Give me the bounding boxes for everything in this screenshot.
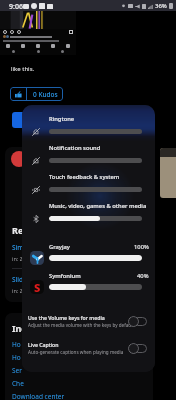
staticText: Live Caption xyxy=(28,341,59,348)
button[interactable] xyxy=(22,336,155,358)
other: BellOff xyxy=(31,127,41,137)
staticText: in: Z xyxy=(12,255,23,262)
staticText: 36% xyxy=(155,2,167,10)
button[interactable] xyxy=(22,112,155,134)
button[interactable]: Ser xyxy=(12,366,22,375)
staticText: Inc xyxy=(12,322,26,334)
button[interactable]: 0 Kudos xyxy=(10,87,63,101)
button[interactable]: Ho xyxy=(12,340,21,349)
staticText: 9:06 xyxy=(9,2,23,12)
other: Bluetooth xyxy=(31,214,41,224)
staticText: Symfonium xyxy=(49,272,81,280)
button[interactable]: Use the Volume keys for media xyxy=(128,315,147,327)
staticText: S xyxy=(34,280,41,294)
staticText: like this. xyxy=(11,65,35,73)
button[interactable] xyxy=(22,268,155,291)
staticText: Use the Volume keys for media xyxy=(28,314,105,321)
staticText: Sim xyxy=(12,243,24,252)
other: BellOff xyxy=(31,156,41,166)
button[interactable] xyxy=(22,170,155,192)
staticText: Grayjay xyxy=(49,243,70,251)
button[interactable]: Che xyxy=(12,379,24,388)
staticText: 100% xyxy=(134,243,149,251)
staticText: Auto-generate captions when playing medi… xyxy=(28,349,124,355)
staticText: 0 Kudos xyxy=(33,90,58,99)
other: Vibrate xyxy=(31,185,41,195)
staticText: Music, video, games & other media xyxy=(49,202,147,210)
staticText: Notification sound xyxy=(49,144,101,152)
staticText: Touch feedback & system xyxy=(49,173,120,181)
staticText: Re xyxy=(12,224,24,236)
button[interactable] xyxy=(22,141,155,163)
button[interactable] xyxy=(22,309,155,331)
staticText: Adjust the media volume with the keys by… xyxy=(28,322,134,328)
staticText: Ringtone xyxy=(49,115,75,123)
staticText: Slid xyxy=(12,275,24,284)
button[interactable]: Live Caption xyxy=(128,342,147,354)
button[interactable] xyxy=(22,199,155,221)
button[interactable]: Ho xyxy=(12,353,21,362)
button[interactable]: Download center xyxy=(12,392,65,400)
staticText: in: Z xyxy=(12,287,23,294)
staticText: 40% xyxy=(137,272,149,280)
button[interactable] xyxy=(22,239,155,262)
